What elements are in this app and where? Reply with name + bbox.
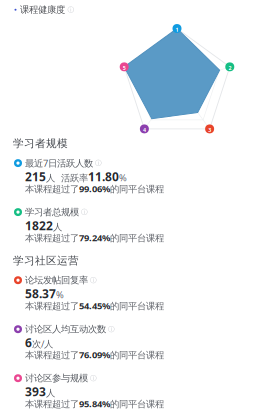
staticText: ⓘ <box>67 6 74 14</box>
staticText: 95.84% <box>79 397 110 410</box>
staticText: 79.24% <box>79 231 110 244</box>
staticText: ⓘ <box>81 208 88 216</box>
staticText: 99.06% <box>79 182 110 195</box>
staticText: 3 <box>208 126 211 134</box>
staticText: 的同平台课程 <box>110 232 164 244</box>
staticText: 的同平台课程 <box>110 183 164 195</box>
staticText: ⓘ <box>90 374 97 382</box>
staticText: 学习社区运营 <box>13 254 79 267</box>
staticText: 学习者规模 <box>13 137 68 150</box>
button[interactable]: 论坛发帖回复率 <box>0 273 262 311</box>
staticText: 2 <box>228 64 231 71</box>
staticText: 人 <box>53 221 62 233</box>
staticText: 215 <box>25 169 46 184</box>
staticText: 本课程超过了 <box>25 349 79 361</box>
staticText: 58.37 <box>25 286 56 302</box>
staticText: ⓘ <box>95 159 102 167</box>
staticText: 讨论区人均互动次数 <box>25 323 106 335</box>
staticText: 11.80 <box>88 169 119 184</box>
staticText: 4 <box>143 126 146 134</box>
staticText: 76.09% <box>79 348 110 361</box>
staticText: 的同平台课程 <box>110 349 164 361</box>
staticText: 本课程超过了 <box>25 398 79 410</box>
button[interactable]: 讨论区人均互动次数 <box>0 322 262 360</box>
button[interactable]: 最近7日活跃人数 <box>0 156 262 194</box>
staticText: 次/人 <box>32 338 53 350</box>
staticText: 1822 <box>25 218 53 233</box>
button[interactable]: 课程健康度 <box>0 4 262 15</box>
staticText: 课程健康度 <box>20 4 65 15</box>
staticText: 讨论区参与规模 <box>25 372 88 384</box>
staticText: 本课程超过了 <box>25 183 79 195</box>
staticText: % <box>56 288 64 301</box>
button[interactable]: 学习者总规模 <box>0 205 262 243</box>
staticText: 人 <box>46 172 55 184</box>
staticText: 论坛发帖回复率 <box>25 274 88 286</box>
staticText: 最近7日活跃人数 <box>25 157 93 169</box>
staticText: ⓘ <box>90 276 97 284</box>
staticText: 1 <box>176 26 179 33</box>
staticText: 本课程超过了 <box>25 300 79 312</box>
staticText: 5 <box>123 64 126 71</box>
staticText: % <box>119 171 127 184</box>
staticText: 学习者总规模 <box>25 206 79 218</box>
staticText: 6 <box>25 335 32 351</box>
button[interactable]: 讨论区参与规模 <box>0 371 262 409</box>
staticText: 54.45% <box>79 299 110 312</box>
staticText: 的同平台课程 <box>110 300 164 312</box>
staticText: 393 <box>25 384 46 400</box>
staticText: 活跃率 <box>55 172 88 184</box>
staticText: 本课程超过了 <box>25 232 79 244</box>
staticText: 人 <box>46 387 55 399</box>
staticText: 的同平台课程 <box>110 398 164 410</box>
staticText: ⓘ <box>108 325 115 333</box>
